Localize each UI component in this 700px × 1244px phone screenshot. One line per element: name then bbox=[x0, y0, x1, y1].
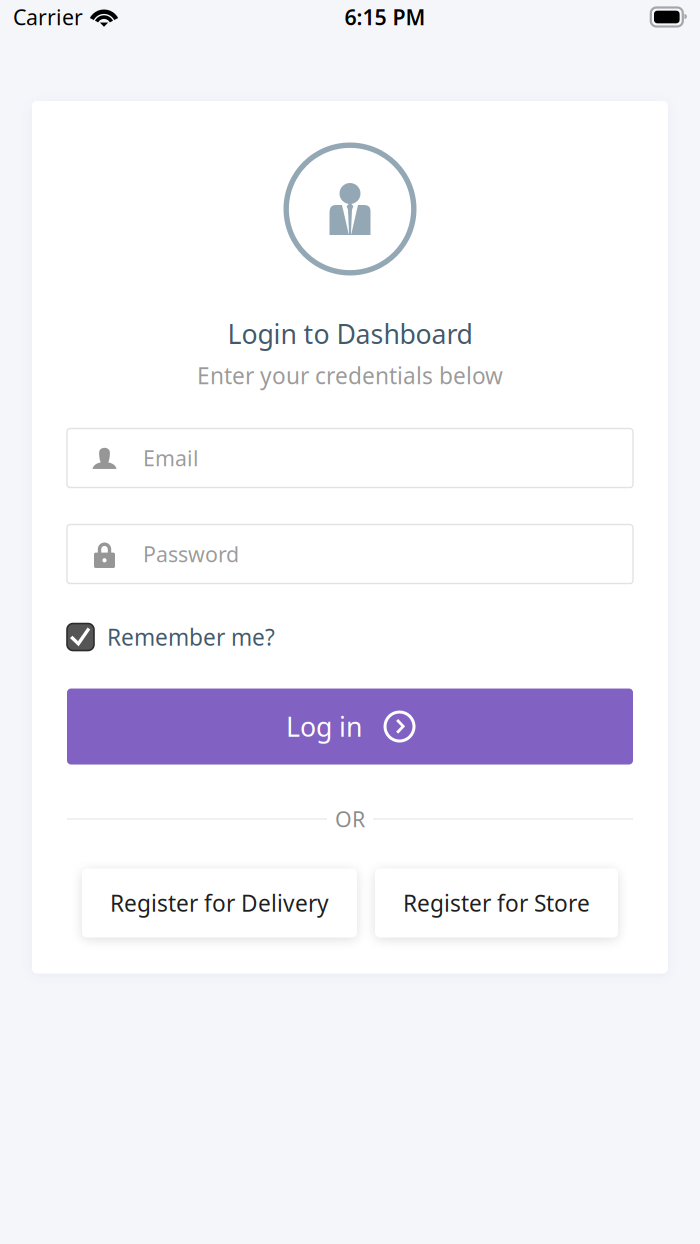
staticText: Login to Dashboard bbox=[227, 316, 472, 351]
button[interactable]: Log in bbox=[67, 688, 633, 764]
staticText: 6:15 PM bbox=[344, 3, 425, 31]
button[interactable]: Remember me? bbox=[67, 621, 633, 652]
staticText: OR bbox=[335, 805, 365, 833]
staticText: Log in bbox=[286, 709, 362, 744]
staticText: Register for Store bbox=[403, 888, 590, 918]
staticText: Carrier bbox=[13, 3, 83, 31]
button[interactable]: Register for Delivery bbox=[82, 868, 357, 937]
staticText: Register for Delivery bbox=[110, 888, 329, 918]
button[interactable]: Register for Store bbox=[375, 868, 618, 937]
staticText: Password bbox=[143, 540, 239, 568]
staticText: Email bbox=[143, 444, 199, 472]
staticText: Enter your credentials below bbox=[197, 360, 503, 390]
staticText: Remember me? bbox=[107, 622, 275, 652]
